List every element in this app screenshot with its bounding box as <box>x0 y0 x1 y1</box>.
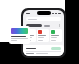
button[interactable]: Search <box>26 17 61 21</box>
button[interactable]: More <box>58 24 61 27</box>
button[interactable] <box>25 29 36 42</box>
button[interactable] <box>50 29 62 42</box>
button[interactable] <box>9 26 30 44</box>
button[interactable] <box>51 47 61 50</box>
button[interactable] <box>37 29 49 42</box>
